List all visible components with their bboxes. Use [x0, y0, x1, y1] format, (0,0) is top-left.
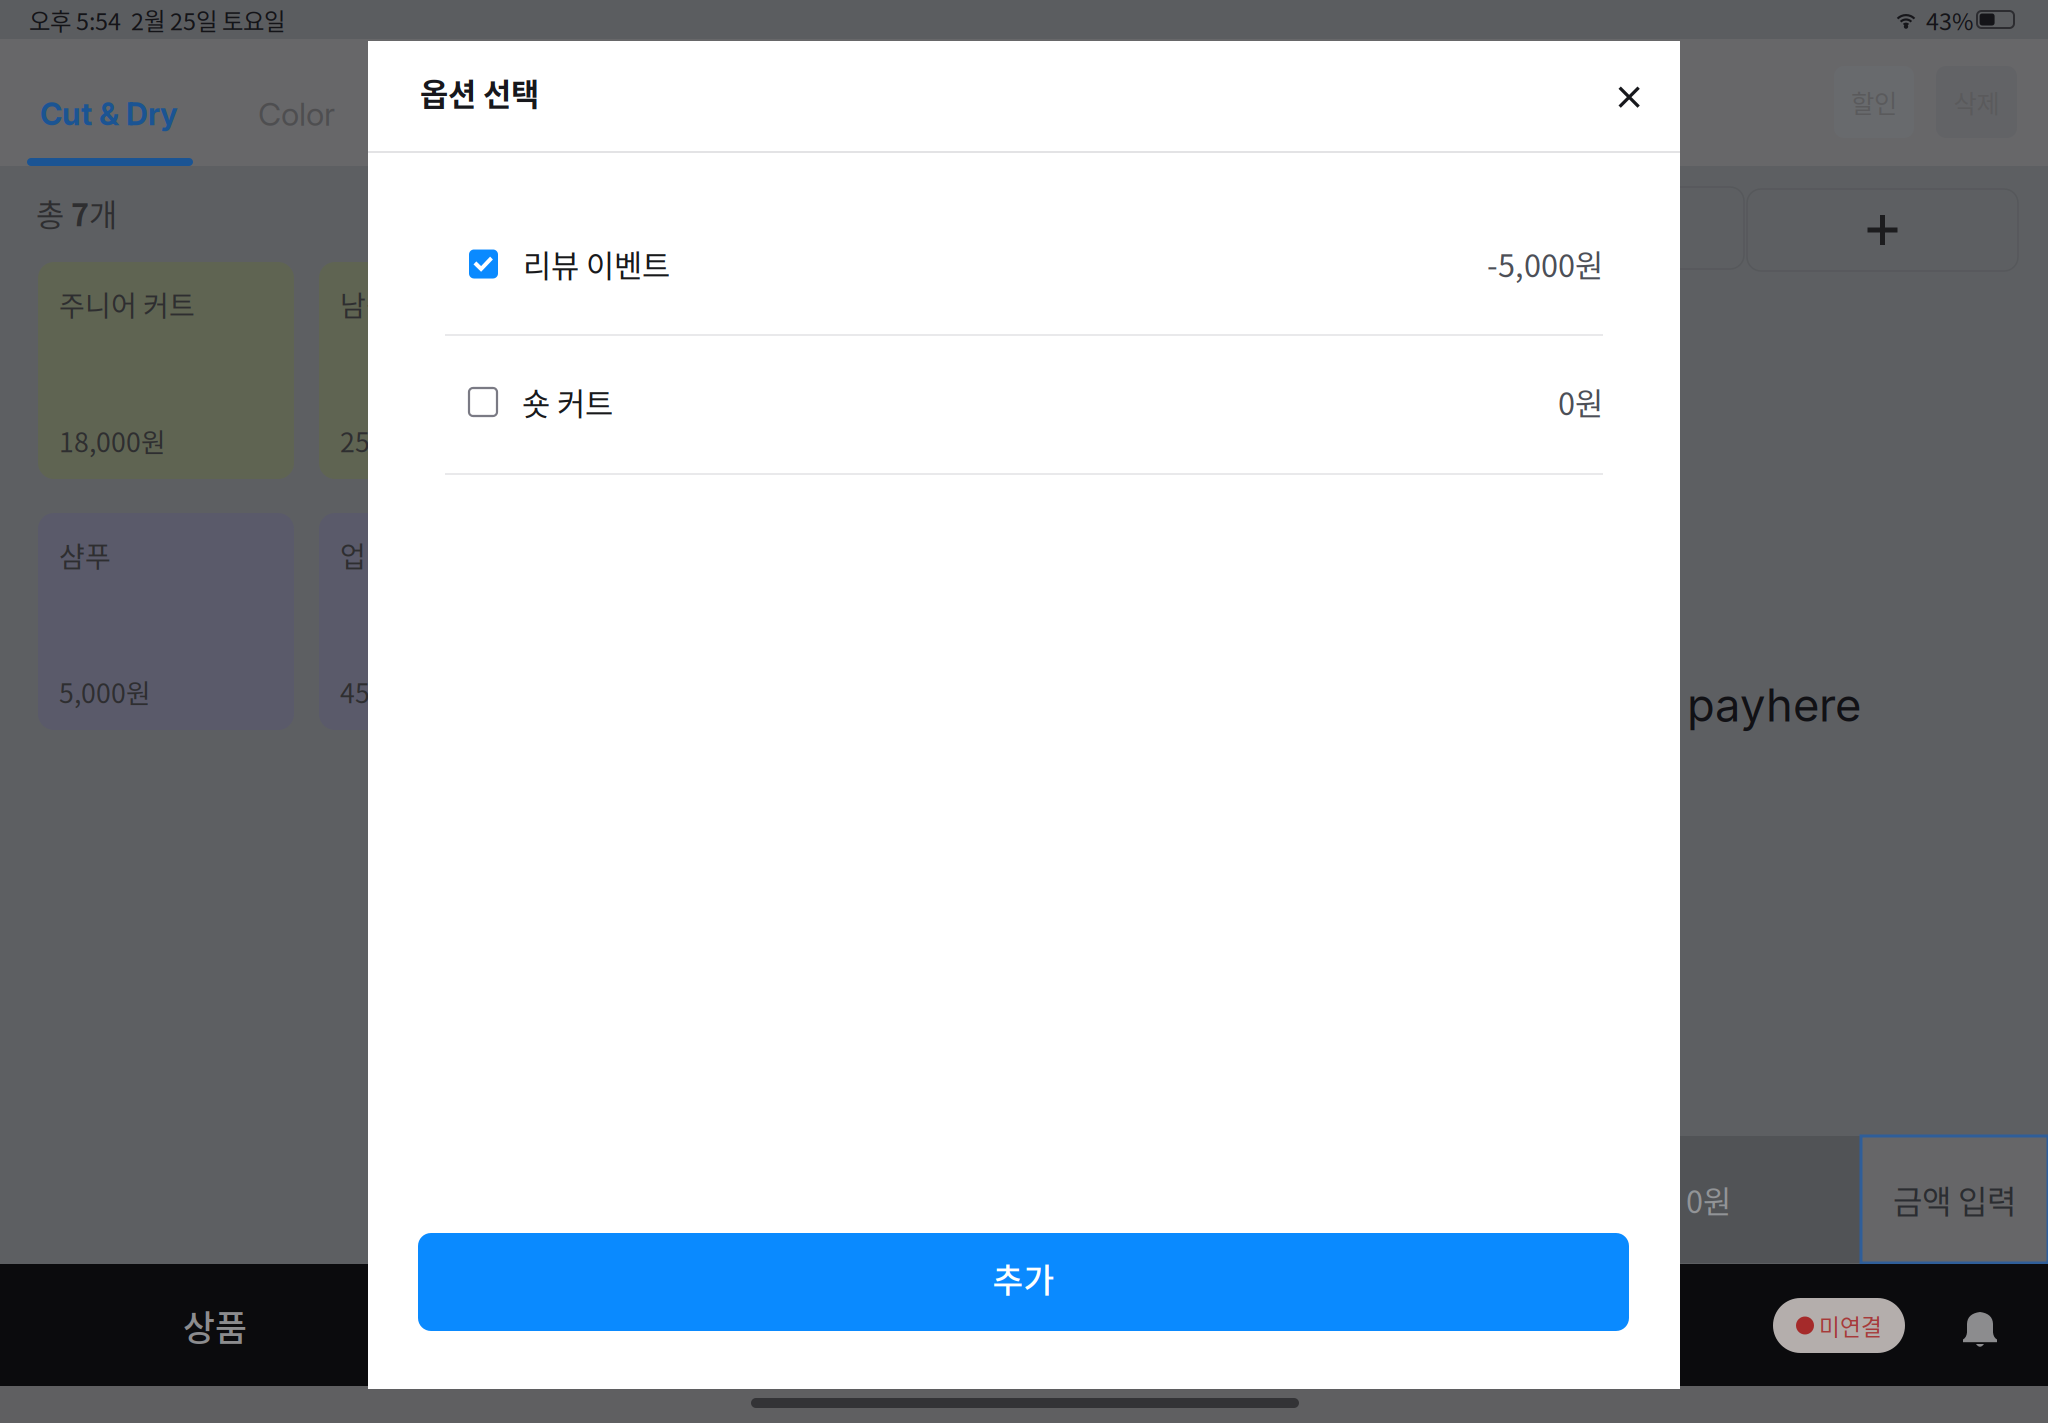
staticText: 할인	[1851, 84, 1897, 120]
staticText: 43%	[1926, 3, 1973, 37]
button[interactable]: Close	[1586, 62, 1672, 132]
button[interactable]: 추가	[418, 1233, 1629, 1331]
button[interactable]: Notifications	[1961, 1309, 1998, 1349]
button[interactable]: 리뷰 이벤트	[469, 194, 1603, 334]
button[interactable]: 주니어 커트	[38, 262, 294, 479]
staticText: 옵션 선택	[420, 70, 539, 115]
staticText: 리뷰 이벤트	[523, 242, 670, 286]
staticText: 추가	[992, 1254, 1054, 1302]
staticText: 7	[71, 191, 89, 235]
button[interactable]: 금액 입력	[1861, 1136, 2048, 1263]
staticText: 숏 커트	[522, 380, 613, 424]
button[interactable]	[1773, 1298, 1905, 1353]
staticText: 삭제	[1953, 84, 1999, 120]
staticText: 25,000원	[340, 421, 447, 460]
staticText: 0원	[1686, 1178, 1731, 1222]
staticText: 금액 입력	[1893, 1176, 2016, 1223]
button[interactable]: 업 스타일	[319, 513, 575, 730]
staticText: 상품	[183, 1301, 247, 1351]
staticText: 2월 25일 토요일	[131, 3, 285, 37]
staticText: Color	[258, 95, 335, 133]
staticText: 0원	[1558, 380, 1603, 424]
button[interactable]: Add item	[1747, 189, 2018, 271]
staticText: 18,000원	[59, 421, 166, 460]
staticText: 미연결	[1819, 1309, 1882, 1342]
staticText: 오후 5:54	[29, 3, 121, 37]
button[interactable]: 상품	[115, 1300, 315, 1352]
button[interactable]: 남성 커트	[319, 262, 575, 479]
button[interactable]: Color	[258, 95, 418, 133]
button[interactable]: 할인	[1834, 66, 1914, 138]
staticText: payhere	[1687, 678, 1861, 732]
staticText: 샴푸	[59, 535, 111, 575]
button[interactable]: 숏 커트	[469, 333, 1603, 471]
staticText: -5,000원	[1487, 242, 1603, 286]
staticText: Cut & Dry	[40, 95, 178, 132]
button[interactable]: Cut & Dry	[40, 95, 200, 132]
staticText: 남성 커트	[340, 284, 450, 324]
staticText: 총	[36, 191, 71, 235]
staticText: 5,000원	[59, 672, 151, 711]
staticText: 업 스타일	[340, 535, 450, 575]
staticText: 45,000원	[340, 672, 447, 711]
button[interactable]: 샴푸	[38, 513, 294, 730]
staticText: 주니어 커트	[59, 284, 195, 324]
staticText: 개	[89, 191, 117, 235]
